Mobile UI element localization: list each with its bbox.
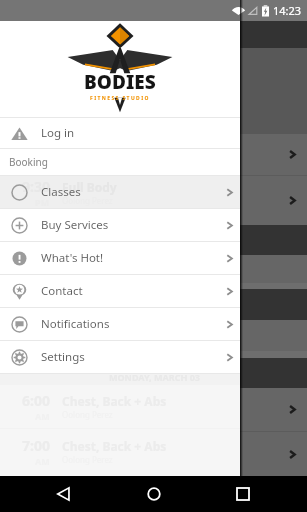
- staticText: Full Body: [62, 187, 117, 203]
- staticText: Online Pedro: [62, 203, 112, 214]
- staticText: 7:00: [22, 436, 50, 455]
- staticText: WEDNESDAY, MARCH 05: [101, 299, 207, 311]
- staticText: Oolong Perez: [62, 195, 113, 206]
- staticText: Chest, Back + Abs: [62, 441, 167, 457]
- button[interactable]: 6:00: [0, 388, 307, 431]
- staticText: PM: [35, 204, 50, 216]
- button[interactable]: Log in: [0, 118, 240, 148]
- staticText: Booking: [9, 155, 48, 169]
- button[interactable]: Home: [134, 476, 174, 512]
- button[interactable]: Classes: [0, 176, 240, 208]
- staticText: 7:00: [22, 439, 50, 458]
- staticText: Chest, Back + Abs: [62, 396, 167, 412]
- staticText: 6:00: [22, 185, 50, 204]
- staticText: What's Hot!: [41, 250, 224, 266]
- staticText: 9:30: [22, 139, 50, 158]
- staticText: 9:30: [22, 177, 50, 196]
- button[interactable]: [0, 320, 307, 351]
- button[interactable]: Recent apps: [223, 476, 263, 512]
- staticText: Chest, Back + Abs: [62, 393, 167, 409]
- button[interactable]: 7:00: [0, 432, 307, 476]
- button[interactable]: What's Hot!: [0, 242, 240, 274]
- button[interactable]: [0, 255, 307, 283]
- staticText: AM: [35, 158, 50, 170]
- staticText: Log in: [41, 125, 235, 141]
- staticText: 6:00: [22, 391, 50, 410]
- staticText: MONDAY, MARCH 03: [108, 367, 199, 379]
- staticText: Contact: [41, 283, 224, 299]
- button[interactable]: Notifications: [0, 308, 240, 340]
- staticText: Chest, Back + Abs: [62, 438, 167, 454]
- staticText: BODIES: [84, 69, 156, 95]
- staticText: Full Body: [62, 141, 117, 157]
- button[interactable]: Back: [43, 476, 83, 512]
- staticText: Notifications: [41, 316, 224, 332]
- button[interactable]: Contact: [0, 275, 240, 307]
- staticText: Classes: [41, 184, 224, 200]
- button[interactable]: 9:30: [0, 134, 307, 175]
- staticText: FITNESS STUDIO: [90, 95, 150, 102]
- staticText: Settings: [41, 349, 224, 365]
- staticText: 14:23: [273, 3, 302, 18]
- staticText: Full Body: [62, 179, 117, 195]
- staticText: Buy Services: [41, 217, 224, 233]
- button[interactable]: 6:00: [0, 176, 307, 225]
- button[interactable]: Settings: [0, 341, 240, 373]
- button[interactable]: Buy Services: [0, 209, 240, 241]
- staticText: 6:00: [22, 394, 50, 413]
- staticText: TUESDAY, MARCH 04: [108, 234, 199, 246]
- staticText: MONDAY, MARCH 03: [109, 371, 200, 382]
